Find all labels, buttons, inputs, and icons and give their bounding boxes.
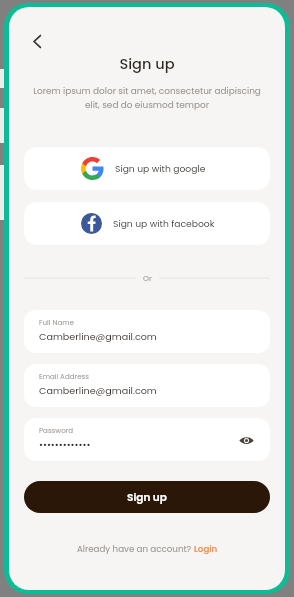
button[interactable]: Sign up with google [24,147,270,190]
staticText: Password [39,426,74,436]
staticText: Sign up [9,54,285,74]
staticText: Login [194,543,218,555]
button[interactable]: Sign up [24,481,270,513]
staticText: Sign up with google [115,162,206,175]
staticText: ••••••••••••• [39,438,91,451]
button[interactable]: Back [24,28,50,54]
staticText: Sign up with facebook [113,217,215,230]
staticText: Camberline@gmail.com [39,384,157,397]
staticText: Or [143,273,152,283]
staticText: Camberline@gmail.com [39,330,157,343]
staticText: Email Address [39,372,89,382]
staticText: Already have an account? [77,543,194,555]
button[interactable]: Login [194,543,218,555]
button[interactable]: Password [24,418,270,461]
button[interactable]: Full Name [24,310,270,353]
staticText: Full Name [39,318,74,328]
staticText: Sign up [127,490,167,505]
button[interactable]: Email Address [24,364,270,407]
staticText: Lorem ipsum dolor sit amet, consectetur … [31,85,263,111]
button[interactable]: Show password [236,430,256,450]
button[interactable]: Sign up with facebook [24,202,270,245]
